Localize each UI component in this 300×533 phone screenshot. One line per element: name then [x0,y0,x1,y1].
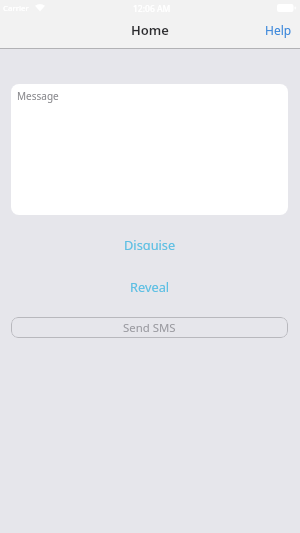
staticText: Disguise [124,236,176,250]
button[interactable]: Help [255,19,300,41]
staticText: Message [17,89,59,103]
staticText: Reveal [130,278,170,292]
staticText: Send SMS [123,320,176,336]
staticText: 12:06 AM [133,3,171,15]
button[interactable]: Send SMS [11,317,288,338]
button[interactable]: Message [11,84,288,215]
staticText: Carrier [3,3,29,14]
other: Battery full [277,4,297,12]
staticText: Home [131,21,169,37]
button[interactable]: Reveal [112,276,188,294]
staticText: Help [265,22,292,38]
other: Wi-Fi signal [35,1,45,12]
button[interactable]: Disguise [106,234,194,252]
